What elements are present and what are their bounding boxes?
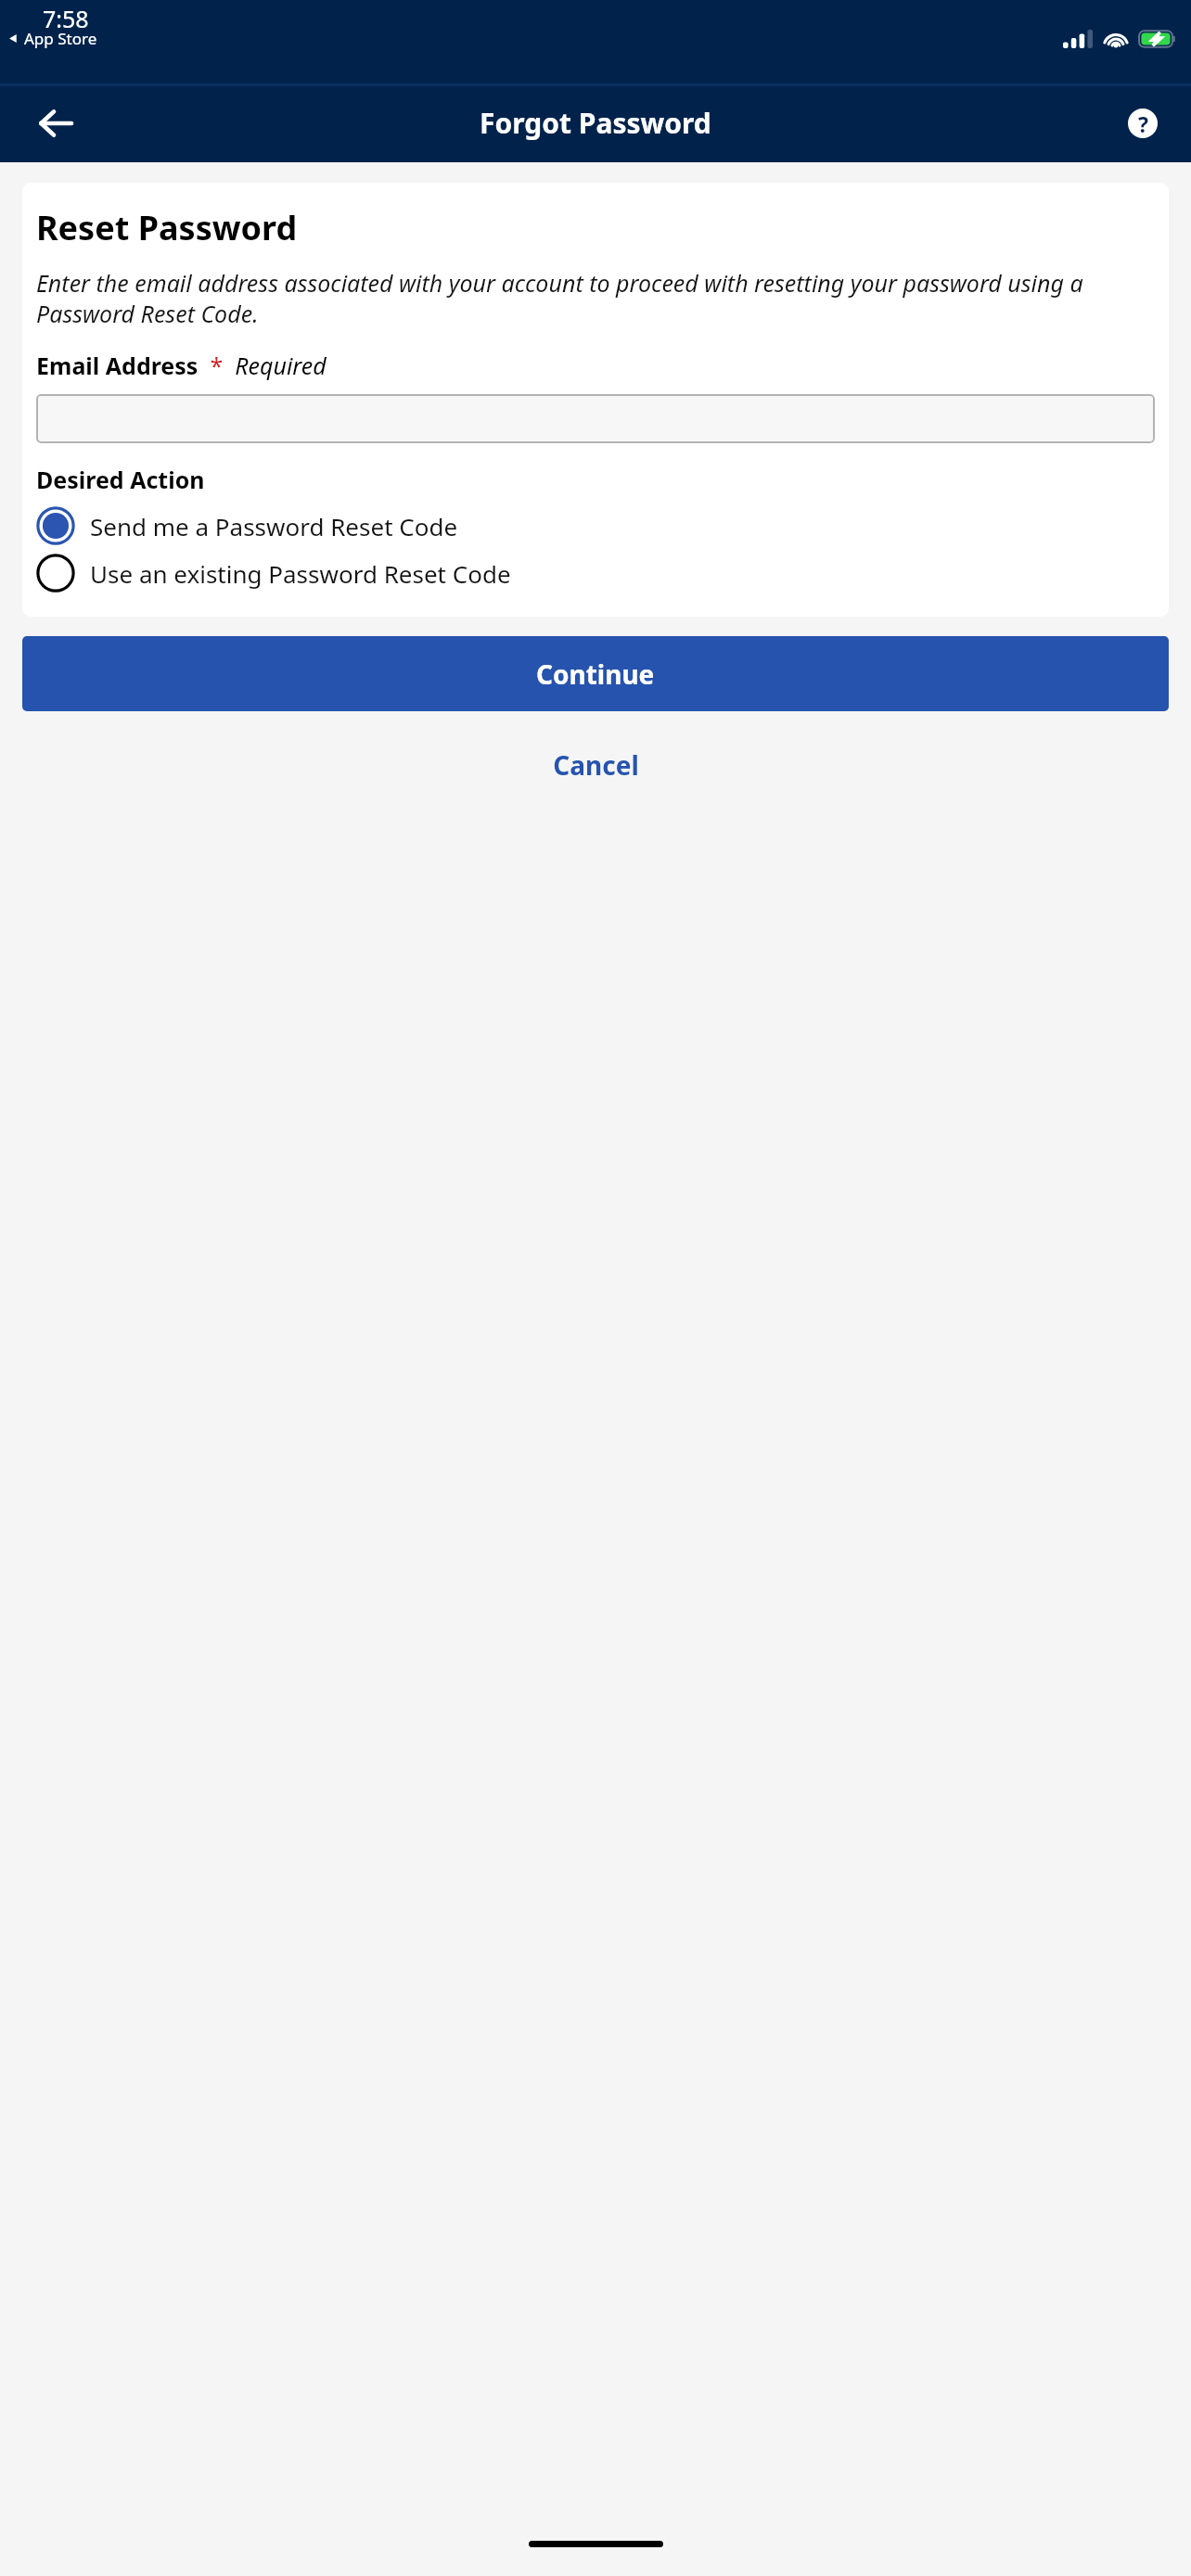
staticText: Forgot Password (480, 104, 711, 142)
staticText: Email Address * Required (36, 350, 327, 381)
staticText: Reset Password (36, 205, 298, 250)
staticText: App Store (24, 28, 97, 49)
button[interactable]: Help (1115, 96, 1171, 151)
button[interactable]: Use an existing Password Reset Code (36, 554, 1155, 593)
button[interactable]: Send me a Password Reset Code (36, 506, 1155, 545)
staticText: Use an existing Password Reset Code (90, 557, 511, 590)
staticText: Desired Action (36, 464, 205, 495)
staticText: Continue (536, 657, 655, 692)
staticText: ? (1138, 109, 1148, 138)
button[interactable]: App Store (7, 28, 97, 49)
staticText: Send me a Password Reset Code (90, 510, 458, 542)
staticText: Cancel (553, 747, 639, 783)
button[interactable]: Cancel (529, 740, 663, 790)
button[interactable]: Email Address input (36, 394, 1155, 443)
button[interactable]: Continue (22, 636, 1169, 711)
button[interactable]: Back (24, 92, 87, 155)
staticText: 7:58 (43, 3, 89, 34)
staticText: Enter the email address associated with … (36, 267, 1155, 329)
